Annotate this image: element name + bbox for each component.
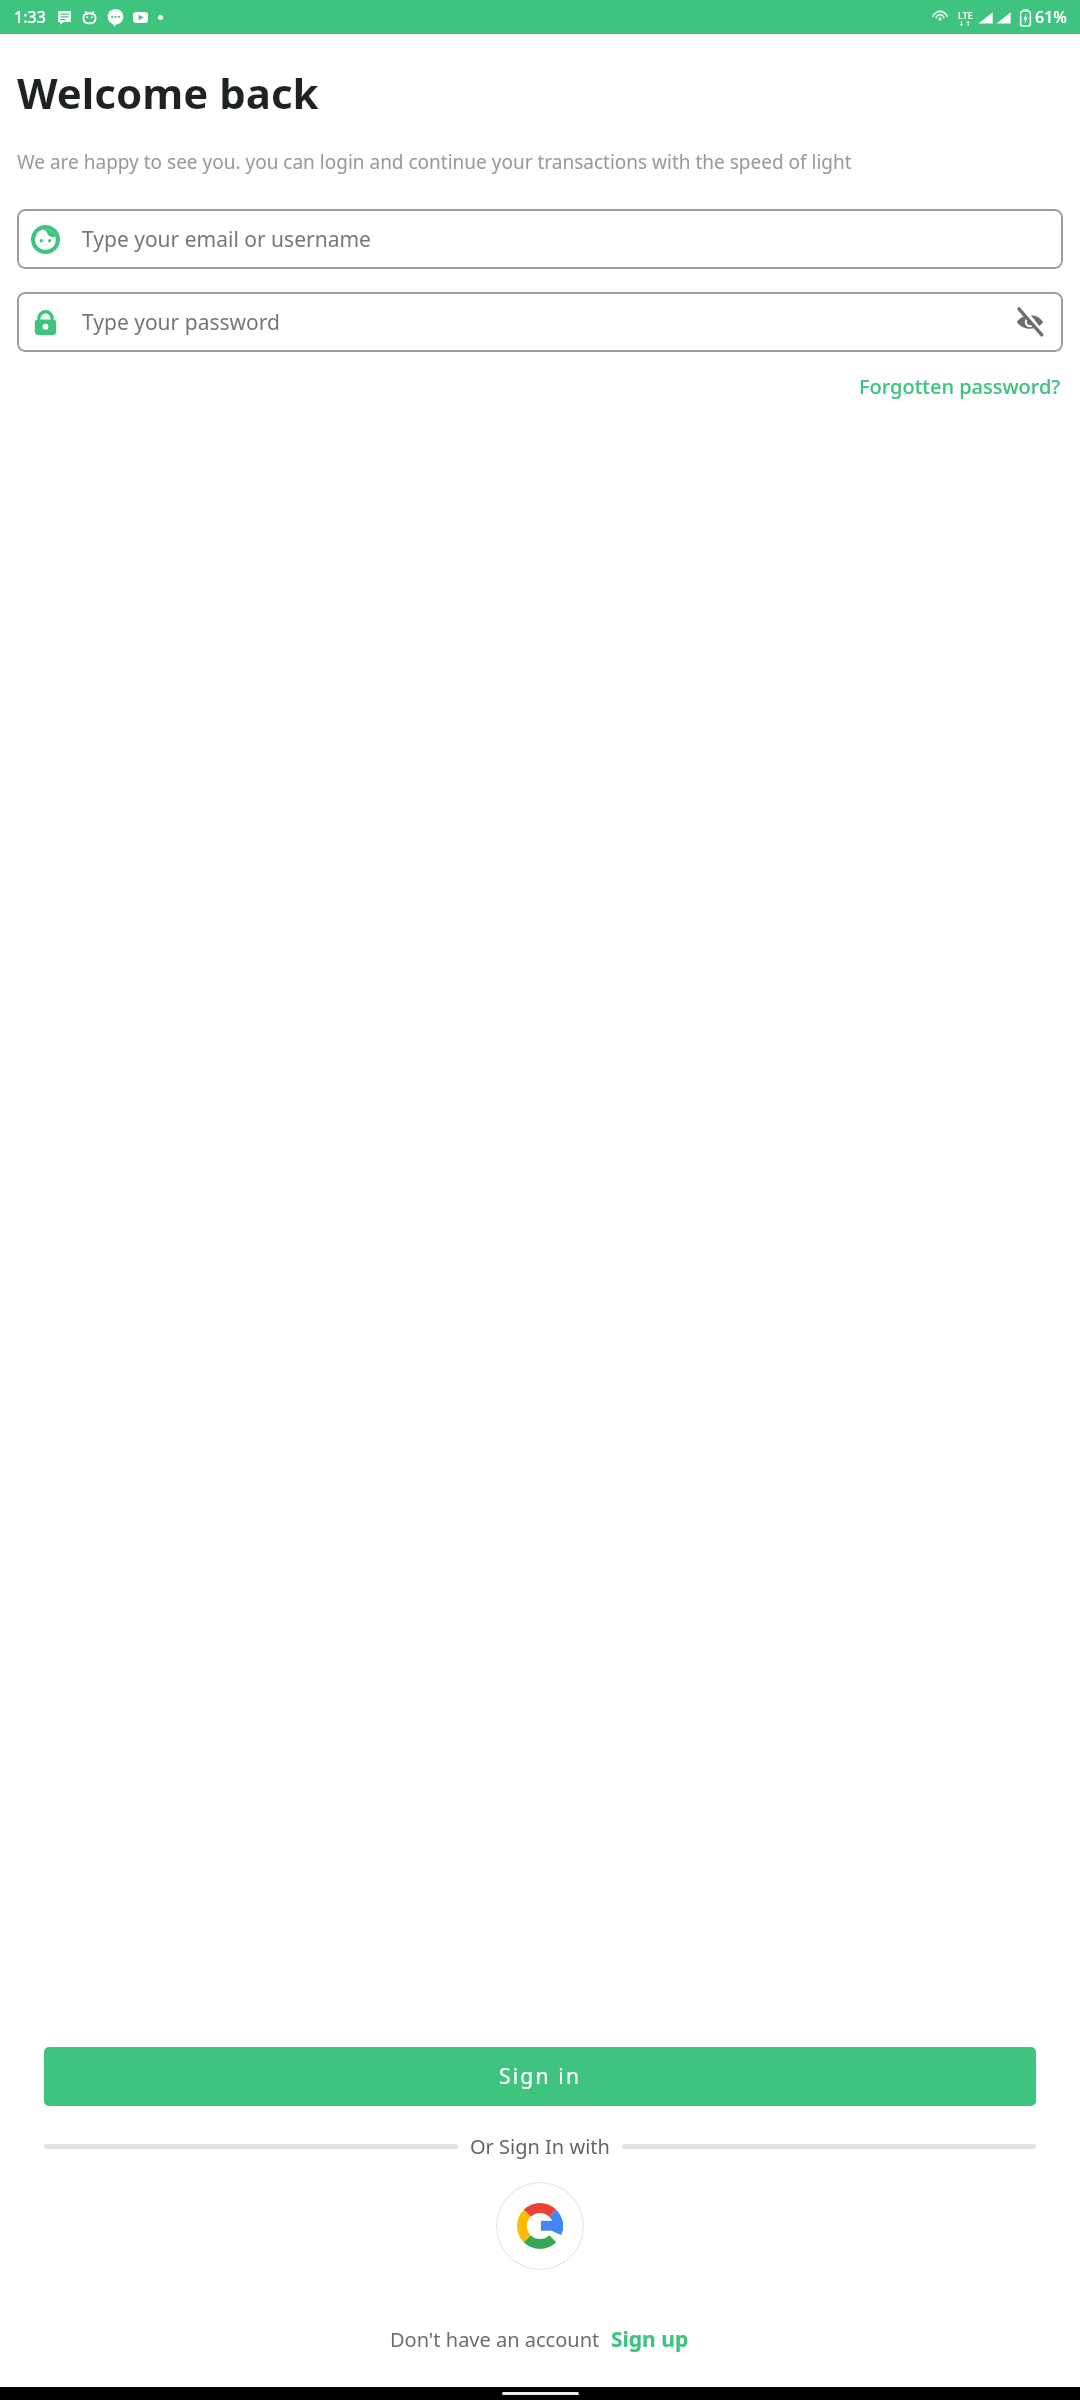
staticText: Welcome back (17, 64, 319, 121)
button[interactable]: Type your password (17, 292, 1063, 352)
button[interactable]: Sign in (44, 2047, 1036, 2106)
staticText: We are happy to see you. you can login a… (17, 149, 852, 175)
staticText: Sign up (611, 2325, 689, 2354)
staticText: Type your password (82, 308, 1011, 337)
staticText: 61% (1035, 6, 1067, 28)
staticText: Sign in (499, 2062, 582, 2091)
staticText: Don't have an account (390, 2326, 600, 2353)
staticText: Forgotten password? (859, 373, 1061, 400)
button[interactable]: Sign up (609, 2322, 691, 2357)
staticText: 1:33 (14, 6, 46, 28)
staticText: Type your email or username (82, 225, 1049, 254)
button[interactable]: Show password (1011, 303, 1049, 341)
button[interactable]: Type your email or username (17, 209, 1063, 269)
button[interactable]: Sign in with Google (496, 2182, 584, 2270)
staticText: Or Sign In with (470, 2133, 610, 2160)
staticText: LTE (958, 9, 973, 21)
button[interactable]: Forgotten password? (857, 369, 1063, 404)
